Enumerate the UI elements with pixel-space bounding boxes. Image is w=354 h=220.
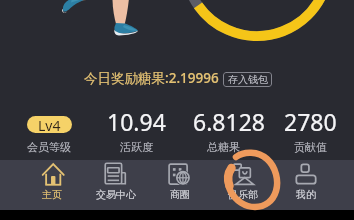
staticText: 主页 (42, 188, 62, 201)
staticText: 6.8128 (193, 106, 265, 132)
staticText: 商圈 (170, 188, 190, 201)
staticText: 俱乐部 (228, 188, 258, 201)
button[interactable]: 存入钱包 (223, 72, 272, 87)
staticText: 贡献值 (294, 140, 327, 154)
staticText: 存入钱包 (228, 73, 268, 86)
staticText: 活跃度 (120, 140, 153, 154)
staticText: 交易中心 (96, 188, 136, 201)
button[interactable]: 俱乐部 (211, 160, 274, 201)
staticText: 我的 (296, 188, 316, 201)
staticText: 10.94 (107, 106, 166, 132)
staticText: 总糖果 (207, 140, 240, 154)
button[interactable]: 商圈 (148, 160, 211, 201)
button[interactable]: 交易中心 (84, 160, 148, 201)
button[interactable]: 主页 (20, 160, 84, 201)
staticText: 2780 (284, 106, 337, 132)
staticText: Lv4 (38, 116, 61, 133)
button[interactable]: Lv4 (27, 116, 72, 133)
staticText: 今日奖励糖果:2.19996 (84, 69, 219, 87)
staticText: 会员等级 (27, 140, 71, 154)
button[interactable]: 我的 (274, 160, 337, 201)
